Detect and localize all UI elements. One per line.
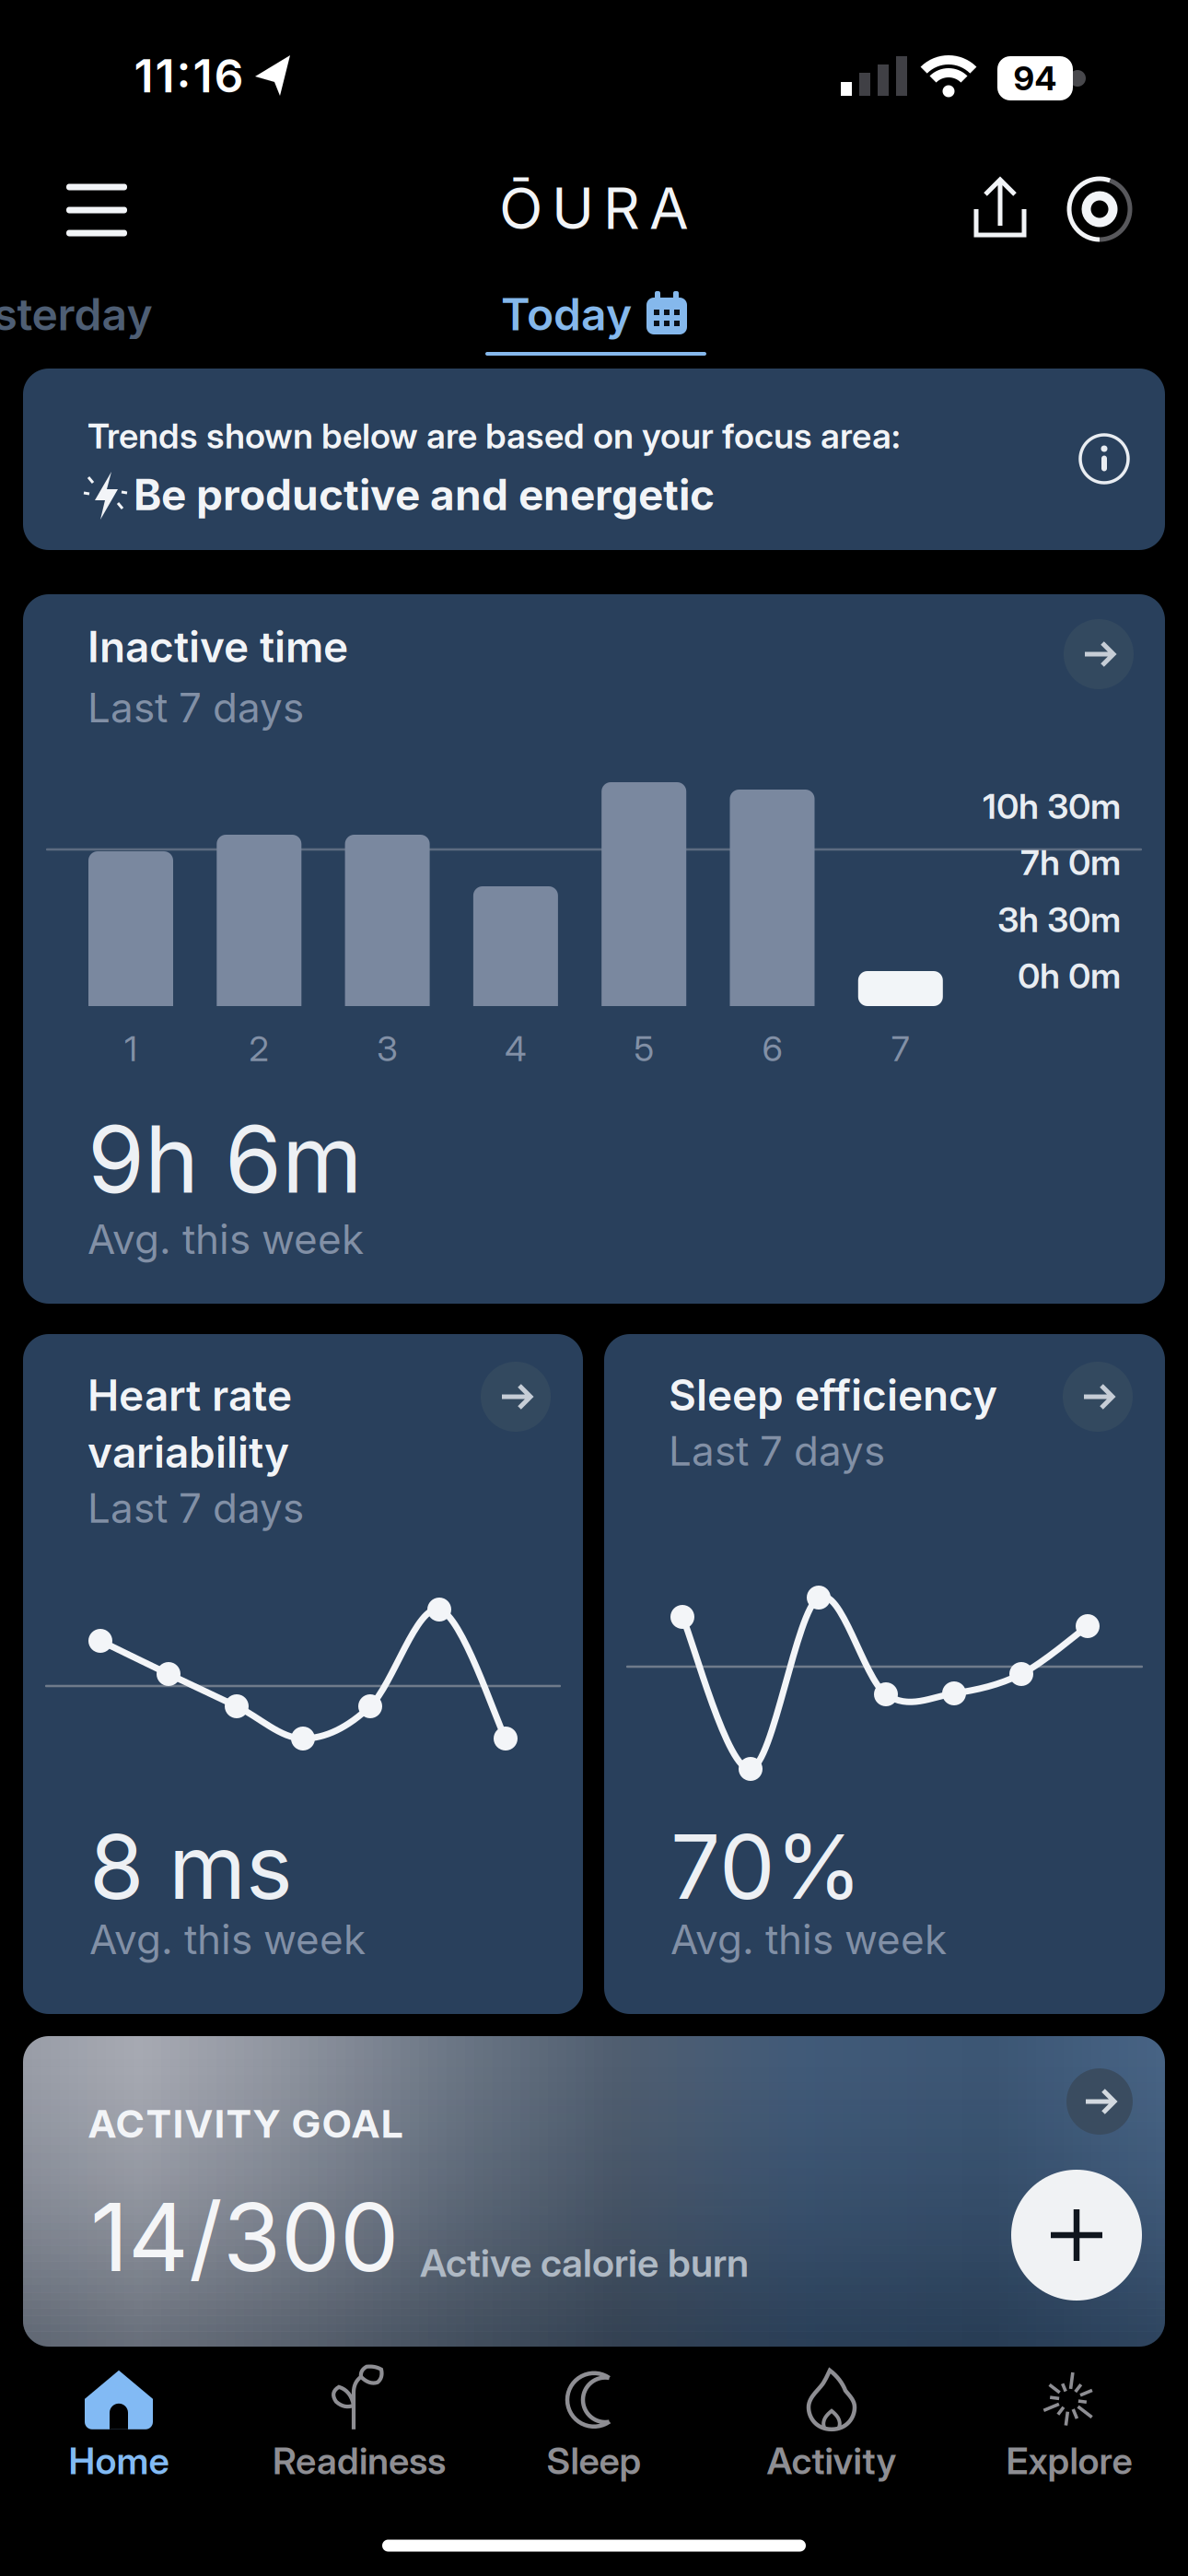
- staticText: Readiness: [273, 2439, 446, 2483]
- button[interactable]: Yesterday: [0, 287, 152, 341]
- staticText: 2: [249, 1027, 269, 1070]
- staticText: Yesterday: [0, 287, 152, 341]
- staticText: Be productive and energetic: [134, 469, 715, 520]
- staticText: 3: [377, 1027, 398, 1070]
- staticText: 1: [124, 1027, 137, 1070]
- staticText: Last 7 days: [669, 1426, 885, 1475]
- staticText: ŌURA: [499, 174, 689, 243]
- staticText: 94: [1013, 58, 1057, 98]
- button[interactable]: Add activity: [1011, 2170, 1142, 2301]
- staticText: Avg. this week: [89, 1915, 366, 1964]
- button[interactable]: Today: [501, 287, 687, 341]
- button[interactable]: Readiness: [241, 2358, 477, 2496]
- staticText: Avg. this week: [670, 1915, 947, 1964]
- staticText: Explore: [1006, 2439, 1132, 2483]
- staticText: Inactive time: [87, 621, 348, 672]
- staticText: Active calorie burn: [420, 2239, 749, 2286]
- staticText: 10h 30m: [983, 785, 1121, 827]
- staticText: 6: [762, 1027, 782, 1070]
- button[interactable]: Explore: [951, 2358, 1187, 2496]
- staticText: variability: [87, 1427, 289, 1478]
- button[interactable]: Inactive time: [23, 594, 1165, 1304]
- staticText: Last 7 days: [87, 683, 304, 732]
- staticText: Last 7 days: [87, 1483, 304, 1532]
- staticText: Trends shown below are based on your foc…: [87, 415, 901, 457]
- staticText: Heart rate: [87, 1370, 292, 1421]
- staticText: Sleep: [547, 2439, 641, 2483]
- button[interactable]: Share: [967, 178, 1033, 239]
- staticText: Activity: [767, 2439, 897, 2483]
- staticText: ACTIVITY GOAL: [88, 2100, 402, 2147]
- button[interactable]: Activity: [714, 2358, 949, 2496]
- staticText: 70%: [670, 1813, 862, 1920]
- staticText: 0h 0m: [1018, 954, 1121, 997]
- button[interactable]: Menu: [60, 180, 134, 240]
- staticText: 3h 30m: [997, 898, 1121, 941]
- button[interactable]: Sleep efficiency: [604, 1334, 1165, 2014]
- staticText: 7: [891, 1027, 910, 1070]
- button[interactable]: Open activity goal: [1066, 2068, 1133, 2135]
- staticText: Home: [69, 2439, 169, 2483]
- button[interactable]: Home: [1, 2358, 237, 2496]
- staticText: 4: [505, 1027, 527, 1070]
- staticText: 8 ms: [89, 1813, 293, 1920]
- staticText: Sleep efficiency: [669, 1370, 997, 1421]
- button[interactable]: Ring status: [1068, 178, 1131, 240]
- button[interactable]: About focus area: [1079, 434, 1129, 484]
- staticText: 11:16: [134, 48, 244, 103]
- staticText: 14/300: [90, 2180, 399, 2294]
- staticText: Today: [501, 287, 632, 341]
- staticText: Avg. this week: [87, 1215, 364, 1264]
- staticText: 7h 0m: [1020, 841, 1121, 884]
- button[interactable]: Heart rate: [23, 1334, 583, 2014]
- staticText: 9h 6m: [87, 1103, 363, 1215]
- staticText: 5: [634, 1027, 654, 1070]
- button[interactable]: Sleep: [476, 2358, 712, 2496]
